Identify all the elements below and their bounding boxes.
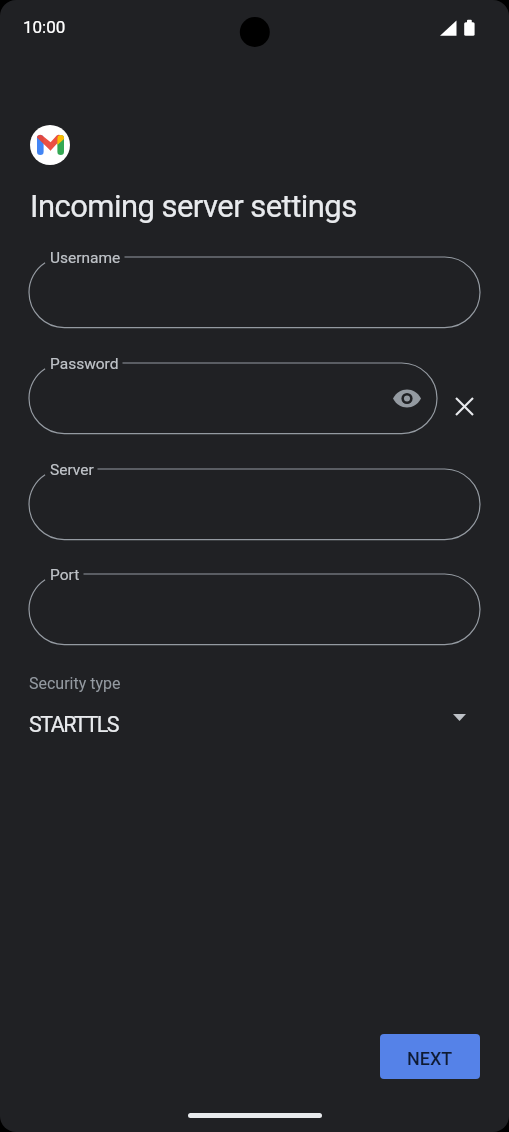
button[interactable] — [29, 457, 480, 540]
staticText: 10:00 — [23, 17, 66, 37]
staticText: Incoming server settings — [30, 188, 357, 224]
staticText: Security type — [29, 674, 121, 693]
staticText: STARTTLS — [29, 712, 118, 737]
button[interactable] — [29, 562, 480, 645]
button[interactable] — [29, 245, 480, 328]
button[interactable]: Clear password — [446, 388, 483, 425]
button[interactable]: Show password — [29, 351, 437, 434]
button[interactable]: NEXT — [380, 1034, 480, 1079]
button[interactable]: Show password — [384, 375, 430, 421]
button[interactable]: Security type — [0, 668, 509, 749]
staticText: NEXT — [407, 1048, 453, 1069]
